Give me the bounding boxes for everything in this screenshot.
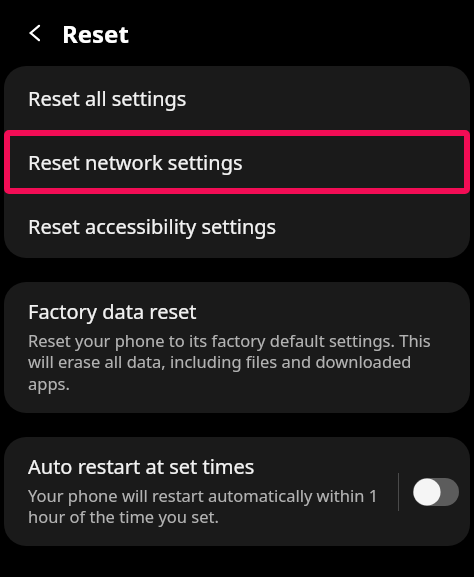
- button[interactable]: Factory data reset: [4, 282, 470, 413]
- button[interactable]: Reset all settings: [4, 66, 470, 130]
- staticText: Reset: [62, 17, 129, 50]
- button[interactable]: Auto restart at set times: [4, 437, 398, 546]
- button[interactable]: Back: [18, 14, 56, 52]
- button[interactable]: Reset network settings: [4, 130, 470, 194]
- staticText: Auto restart at set times: [28, 453, 255, 480]
- staticText: Reset all settings: [28, 85, 187, 112]
- staticText: Factory data reset: [28, 298, 197, 325]
- button[interactable]: Reset accessibility settings: [4, 194, 470, 258]
- staticText: Reset your phone to its factory default …: [28, 329, 448, 395]
- staticText: Reset network settings: [28, 149, 243, 176]
- button[interactable]: Auto restart toggle: [412, 472, 460, 512]
- staticText: Your phone will restart automatically wi…: [28, 484, 390, 528]
- staticText: Reset accessibility settings: [28, 213, 277, 240]
